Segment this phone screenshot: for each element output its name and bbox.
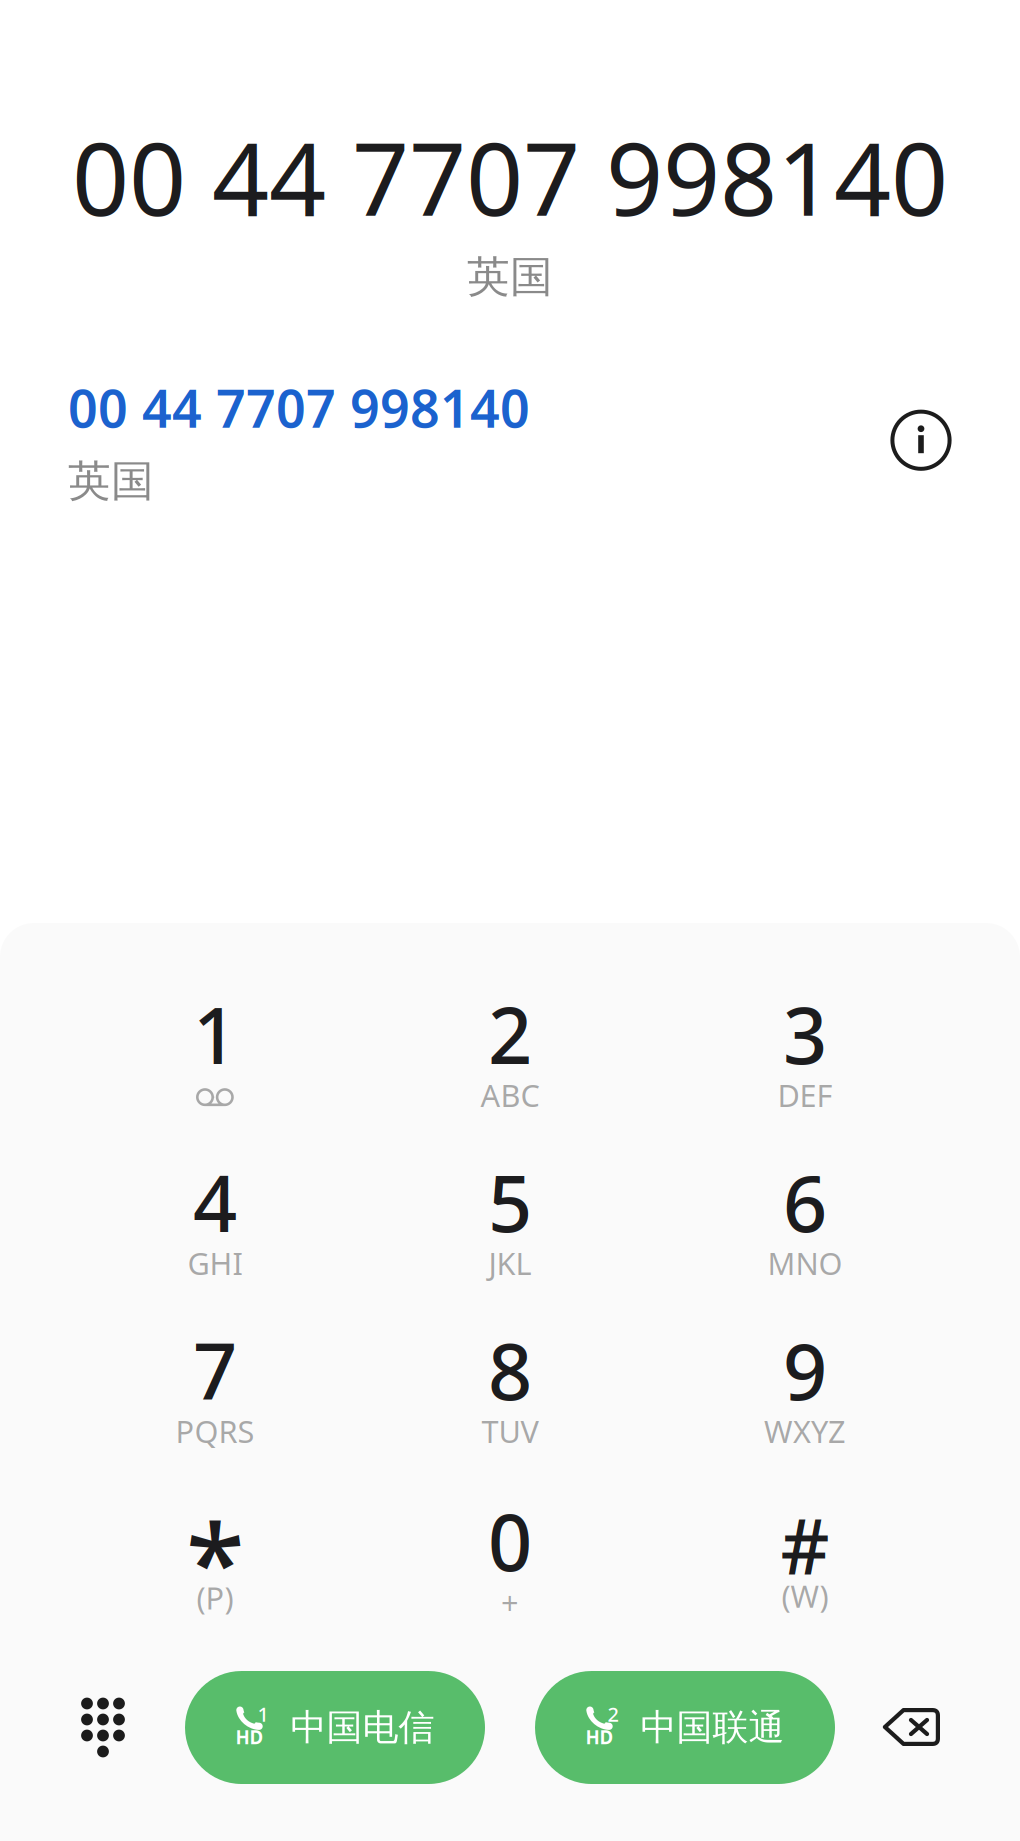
button[interactable]: 3 — [657, 980, 952, 1148]
button[interactable]: 2 — [362, 980, 657, 1148]
staticText: PQRS — [175, 1411, 254, 1451]
button[interactable]: 0 — [362, 1484, 657, 1652]
staticText: 英国 — [467, 251, 553, 303]
staticText: GHI — [187, 1243, 242, 1283]
staticText: 0 — [488, 1490, 532, 1592]
staticText: 6 — [783, 1151, 827, 1253]
button[interactable]: 00 44 7707 998140 — [68, 373, 530, 507]
staticText: 8 — [488, 1319, 532, 1421]
staticText: # — [780, 1494, 829, 1595]
button[interactable]: 2 — [535, 1671, 835, 1784]
staticText: HD — [235, 1725, 263, 1749]
staticText: 2 — [488, 983, 532, 1085]
staticText: TUV — [481, 1411, 538, 1451]
staticText: JKL — [488, 1243, 531, 1283]
button[interactable]: 1 — [185, 1671, 485, 1784]
staticText: ABC — [480, 1075, 539, 1115]
button[interactable]: 8 — [362, 1316, 657, 1484]
staticText: DEF — [777, 1075, 832, 1115]
staticText: WXYZ — [764, 1411, 846, 1451]
staticText: 4 — [193, 1151, 237, 1253]
staticText: 英国 — [68, 455, 154, 507]
staticText: 2 — [607, 1701, 618, 1727]
staticText: 5 — [488, 1151, 532, 1253]
staticText: MNO — [767, 1243, 842, 1283]
staticText: 1 — [257, 1701, 268, 1727]
staticText: 1 — [193, 983, 237, 1085]
staticText: (W) — [781, 1575, 828, 1616]
button[interactable]: * — [67, 1484, 362, 1652]
staticText: * — [186, 1490, 244, 1632]
staticText: 9 — [783, 1319, 827, 1421]
staticText: 中国联通 — [640, 1705, 784, 1750]
staticText: HD — [585, 1725, 613, 1749]
button[interactable]: 1 — [67, 980, 362, 1148]
button[interactable]: 6 — [657, 1148, 952, 1316]
button[interactable]: Delete — [825, 1671, 999, 1784]
staticText: 00 44 7707 998140 — [68, 373, 530, 442]
staticText: 中国电信 — [290, 1705, 434, 1750]
staticText: 7 — [193, 1319, 237, 1421]
button[interactable]: 4 — [67, 1148, 362, 1316]
button[interactable]: 9 — [657, 1316, 952, 1484]
button[interactable]: Info — [890, 409, 952, 471]
staticText: (P) — [196, 1577, 233, 1618]
button[interactable]: Keypad — [16, 1671, 190, 1784]
button[interactable]: 5 — [362, 1148, 657, 1316]
button[interactable]: 7 — [67, 1316, 362, 1484]
button[interactable]: # — [657, 1484, 952, 1652]
staticText: + — [501, 1582, 519, 1622]
staticText: 3 — [783, 983, 827, 1085]
staticText: 00 44 7707 998140 — [72, 111, 948, 243]
